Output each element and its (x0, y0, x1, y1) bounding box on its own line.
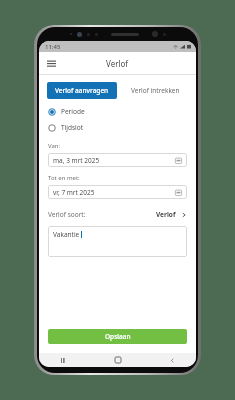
button[interactable]: Verlof soort: (39, 207, 196, 222)
button[interactable]: Verlof intrekken (127, 82, 184, 99)
other: Pick date (175, 157, 182, 164)
button[interactable]: Tijdslot (39, 122, 196, 133)
staticText: Vakantie (53, 230, 80, 239)
staticText: Verlof aanvragen (55, 86, 109, 95)
button[interactable]: Menu (43, 55, 59, 71)
staticText: Verlof soort: (48, 210, 86, 219)
button[interactable]: Home (112, 354, 124, 366)
staticText: Verlof intrekken (131, 86, 180, 95)
button[interactable]: Opslaan (48, 329, 187, 344)
staticText: Verlof (106, 58, 129, 69)
staticText: Tijdslot (61, 123, 84, 132)
button[interactable]: Periode (39, 106, 196, 117)
button[interactable]: Back (166, 354, 178, 366)
staticText: Opslaan (105, 332, 131, 341)
staticText: vr, 7 mrt 2025 (53, 188, 95, 197)
button[interactable]: Verlof aanvragen (47, 82, 117, 99)
button[interactable]: Recent apps (57, 354, 69, 366)
button[interactable]: Vakantie (48, 226, 187, 257)
staticText: Tot en met: (48, 174, 80, 182)
staticText: ma, 3 mrt 2025 (53, 156, 100, 165)
staticText: Van: (48, 142, 61, 150)
staticText: 11:45 (45, 43, 61, 51)
staticText: Periode (61, 107, 85, 116)
other: Pick date (175, 189, 182, 196)
button[interactable]: vr, 7 mrt 2025 (48, 185, 187, 199)
staticText: Verlof (156, 210, 176, 219)
button[interactable]: ma, 3 mrt 2025 (48, 153, 187, 167)
